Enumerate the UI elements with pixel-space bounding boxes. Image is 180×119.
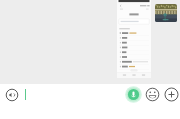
button[interactable] (22, 84, 124, 104)
button[interactable] (117, 0, 151, 78)
button[interactable]: Emoji (143, 85, 161, 103)
button[interactable]: Hold to talk (124, 85, 142, 103)
button[interactable]: More (162, 85, 180, 103)
button[interactable] (155, 4, 177, 22)
button[interactable]: Switch to voice input (4, 87, 19, 102)
